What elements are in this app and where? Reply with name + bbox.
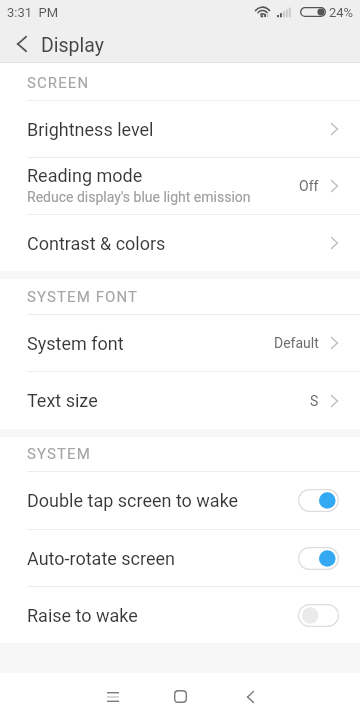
staticText: Raise to wake <box>27 605 298 626</box>
staticText: Contrast & colors <box>27 233 166 254</box>
button[interactable]: Back <box>228 674 273 719</box>
button[interactable]: Text size <box>0 372 360 429</box>
staticText: S <box>310 393 319 409</box>
staticText: Reading mode <box>27 165 143 186</box>
staticText: Default <box>274 335 319 351</box>
staticText: 3:31 PM <box>7 5 59 20</box>
button[interactable]: Reading mode <box>0 158 360 214</box>
button[interactable]: System font <box>0 315 360 371</box>
button[interactable]: Navigate up <box>0 24 43 62</box>
staticText: Text size <box>27 390 98 411</box>
staticText: Reduce display's blue light emission <box>27 189 251 205</box>
staticText: System font <box>27 333 124 354</box>
staticText: SCREEN <box>27 74 90 92</box>
button[interactable]: Recent apps <box>90 674 135 719</box>
staticText: 24% <box>329 5 354 20</box>
button[interactable]: Auto-rotate screen <box>0 530 360 586</box>
staticText: Display <box>41 34 104 57</box>
staticText: Auto-rotate screen <box>27 548 298 569</box>
staticText: Off <box>299 178 319 194</box>
staticText: SYSTEM FONT <box>27 288 139 306</box>
button[interactable]: Contrast & colors <box>0 215 360 271</box>
button[interactable]: Raise to wake <box>0 587 360 643</box>
button[interactable]: Home <box>158 674 203 719</box>
staticText: SYSTEM <box>27 445 91 463</box>
staticText: Double tap screen to wake <box>27 490 298 511</box>
button[interactable]: Double tap screen to wake <box>0 472 360 529</box>
button[interactable]: Brightness level <box>0 101 360 157</box>
staticText: Brightness level <box>27 119 154 140</box>
